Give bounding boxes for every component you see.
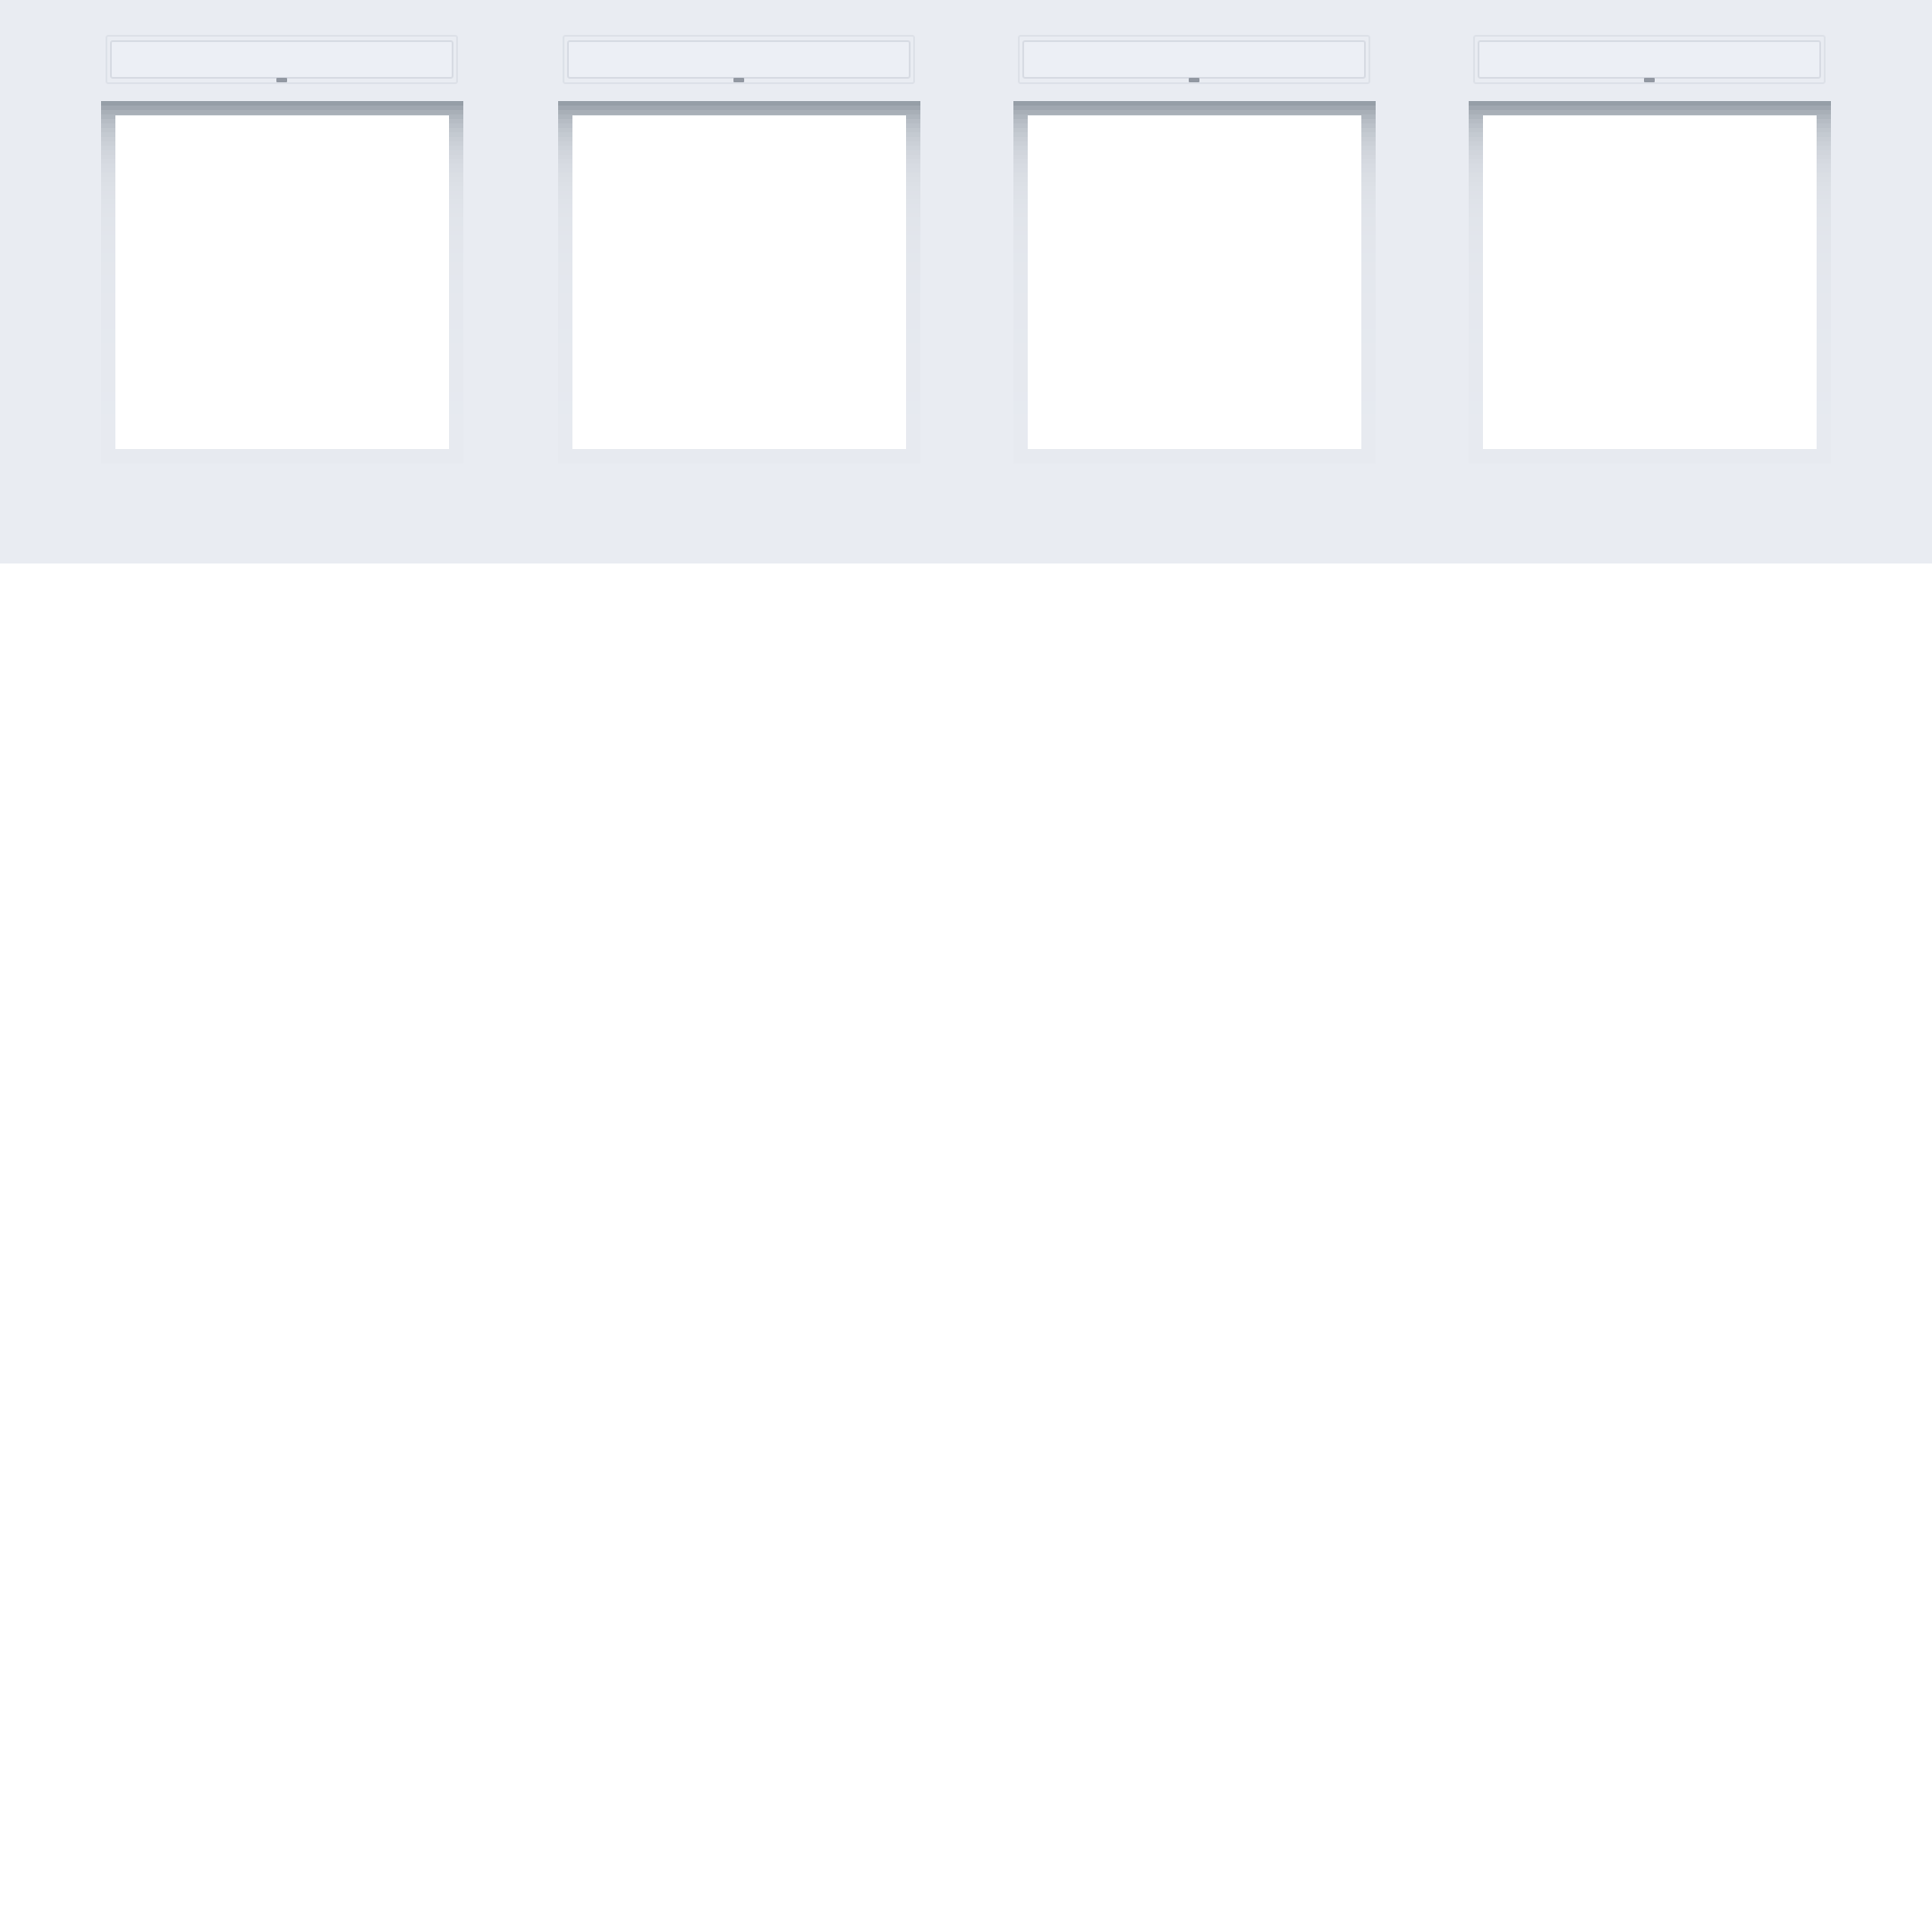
button[interactable]: Item Three xyxy=(1013,36,1382,463)
button[interactable]: Item One xyxy=(100,36,470,463)
button[interactable]: Item Four xyxy=(1468,36,1837,463)
button[interactable]: Item Two xyxy=(557,36,927,463)
